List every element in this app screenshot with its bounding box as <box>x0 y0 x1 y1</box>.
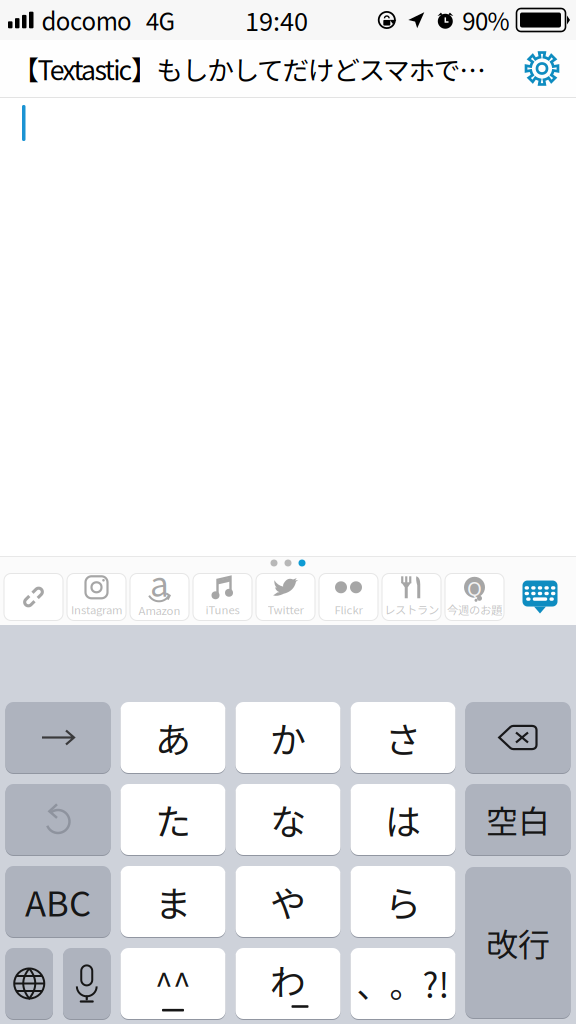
staticText: Flickr <box>334 601 362 617</box>
button[interactable]: Restaurant <box>382 573 441 620</box>
staticText: a <box>150 558 169 606</box>
button[interactable]: わ <box>235 947 340 1020</box>
staticText: 19:40 <box>245 2 308 38</box>
staticText: た <box>155 793 191 845</box>
staticText: Instagram <box>71 601 122 617</box>
button[interactable]: さ <box>350 701 455 774</box>
button[interactable]: Delete <box>465 701 570 774</box>
staticText: な <box>270 793 306 845</box>
button[interactable]: な <box>235 783 340 856</box>
staticText: 【Textastic】もしかしてだけどスマホで… <box>12 49 486 88</box>
staticText: 90% <box>462 3 509 37</box>
button[interactable]: Weekly topic <box>445 573 504 620</box>
button[interactable]: Emoticon <box>120 947 225 1020</box>
button[interactable]: 空白 <box>465 783 570 856</box>
button[interactable]: Dictation <box>63 947 110 1020</box>
staticText: あ <box>155 711 191 763</box>
button[interactable]: Instagram <box>67 573 126 620</box>
staticText: docomo <box>41 3 132 37</box>
button[interactable]: 改行 <box>465 866 570 1019</box>
button[interactable]: ABC <box>5 865 110 938</box>
staticText: か <box>270 711 306 763</box>
button[interactable]: Amazon <box>130 573 189 620</box>
staticText: 4G <box>146 3 175 37</box>
staticText: ら <box>385 875 421 927</box>
button[interactable]: あ <box>120 701 225 774</box>
staticText: や <box>270 875 306 927</box>
button[interactable]: Next candidate <box>5 701 110 774</box>
button[interactable]: 、。?! <box>350 947 455 1020</box>
button[interactable]: Hide keyboard <box>522 579 558 614</box>
button[interactable]: Next keyboard <box>5 947 53 1020</box>
staticText: さ <box>385 711 421 763</box>
button[interactable]: Settings <box>514 40 570 96</box>
staticText: 、。?! <box>356 959 449 1008</box>
button[interactable]: iTunes <box>193 573 252 620</box>
button[interactable]: や <box>235 865 340 938</box>
staticText: レストラン <box>384 601 439 617</box>
staticText: 空白 <box>486 796 550 843</box>
button[interactable]: は <box>350 783 455 856</box>
button[interactable]: Flickr <box>319 573 378 620</box>
staticText: は <box>385 793 421 845</box>
button[interactable]: か <box>235 701 340 774</box>
button[interactable]: ら <box>350 865 455 938</box>
staticText: ABC <box>25 876 91 927</box>
staticText: 改行 <box>486 919 550 966</box>
button[interactable]: Undo <box>5 783 110 856</box>
staticText: 今週のお題 <box>447 601 502 618</box>
staticText: Q <box>467 573 482 602</box>
button[interactable]: Link <box>4 573 63 620</box>
staticText: ま <box>155 875 191 927</box>
staticText: わ <box>270 954 306 1006</box>
staticText: ^^ <box>155 959 191 1006</box>
staticText: Twitter <box>267 601 303 617</box>
button[interactable]: ま <box>120 865 225 938</box>
staticText: iTunes <box>205 601 239 617</box>
button[interactable]: た <box>120 783 225 856</box>
button[interactable]: Twitter <box>256 573 315 620</box>
staticText: Amazon <box>138 602 180 618</box>
